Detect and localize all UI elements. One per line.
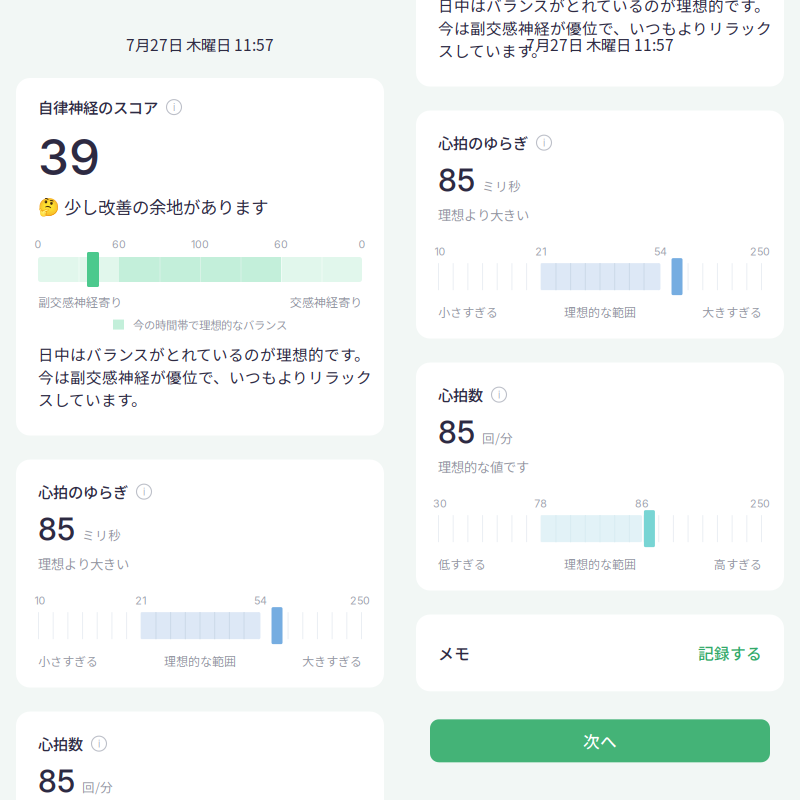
staticText: 0 <box>34 238 41 251</box>
staticText: 78 <box>534 497 547 510</box>
staticText: 54 <box>654 245 667 258</box>
staticText: 日中はバランスがとれているのが理想的です。 今は副交感神経が優位で、いつもよりリ… <box>438 0 772 62</box>
staticText: 7月27日 木曜日 11:57 <box>526 33 674 55</box>
staticText: i <box>143 486 145 498</box>
staticText: 54 <box>254 594 267 607</box>
staticText: 理想的な範囲 <box>164 652 236 670</box>
staticText: 小さすぎる <box>438 303 498 321</box>
staticText: 理想的な範囲 <box>564 555 636 573</box>
staticText: 理想より大きい <box>438 205 529 224</box>
button[interactable]: メモ <box>416 614 784 691</box>
staticText: 心拍数 <box>438 383 483 406</box>
staticText: i <box>98 738 100 750</box>
staticText: i <box>498 389 500 401</box>
staticText: 理想的な範囲 <box>564 303 636 321</box>
staticText: 記録する <box>698 641 762 664</box>
staticText: 85 <box>438 414 475 451</box>
staticText: 39 <box>38 127 100 187</box>
button[interactable]: 次へ <box>430 719 770 762</box>
staticText: 大きすぎる <box>702 303 762 321</box>
staticText: ミリ秒 <box>82 525 121 544</box>
staticText: 心拍数 <box>38 732 83 755</box>
staticText: 心拍のゆらぎ <box>38 480 128 503</box>
staticText: 60 <box>274 238 288 251</box>
staticText: 今の時間帯で理想的なバランス <box>133 316 287 333</box>
staticText: i <box>173 102 175 113</box>
staticText: 21 <box>135 594 146 607</box>
staticText: 85 <box>438 162 475 199</box>
staticText: 回/分 <box>82 777 113 796</box>
staticText: メモ <box>438 641 470 664</box>
staticText: 小さすぎる <box>38 652 98 670</box>
staticText: 30 <box>433 497 447 510</box>
staticText: 60 <box>112 238 126 251</box>
staticText: 85 <box>38 511 75 548</box>
staticText: 理想的な値です <box>438 457 529 476</box>
staticText: 250 <box>750 245 770 258</box>
staticText: 副交感神経寄り <box>38 293 122 310</box>
staticText: 86 <box>635 497 649 510</box>
staticText: 高すぎる <box>714 555 762 573</box>
staticText: 理想より大きい <box>38 554 129 573</box>
staticText: 交感神経寄り <box>290 293 362 310</box>
staticText: 250 <box>350 594 370 607</box>
staticText: 85 <box>38 763 75 800</box>
staticText: 日中はバランスがとれているのが理想的です。 今は副交感神経が優位で、いつもよりリ… <box>38 343 372 411</box>
staticText: 心拍のゆらぎ <box>438 131 528 154</box>
staticText: 21 <box>535 245 546 258</box>
staticText: 回/分 <box>482 428 513 447</box>
staticText: 次へ <box>583 729 617 753</box>
staticText: 10 <box>34 594 45 607</box>
staticText: 低すぎる <box>438 555 486 573</box>
staticText: 250 <box>750 497 770 510</box>
staticText: ミリ秒 <box>482 176 521 195</box>
staticText: 自律神経のスコア <box>38 96 158 118</box>
staticText: 大きすぎる <box>302 652 362 670</box>
staticText: 0 <box>358 238 365 251</box>
staticText: 🤔 少し改善の余地があります <box>38 194 268 219</box>
staticText: 100 <box>191 238 209 251</box>
staticText: 7月27日 木曜日 11:57 <box>126 33 274 55</box>
staticText: 10 <box>434 245 445 258</box>
staticText: i <box>543 137 545 149</box>
